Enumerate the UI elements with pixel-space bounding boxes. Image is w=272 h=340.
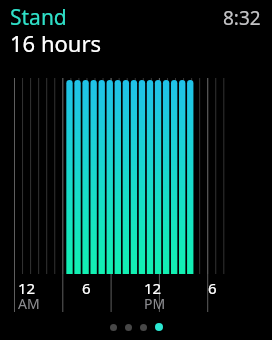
staticText: 6 — [208, 278, 217, 298]
staticText: 6 — [82, 278, 91, 298]
button[interactable]: Stand hours chart — [0, 0, 272, 340]
staticText: PM — [144, 294, 166, 313]
staticText: 12 — [18, 278, 36, 298]
staticText: 8:32 — [223, 5, 261, 31]
staticText: Stand — [10, 3, 67, 32]
staticText: 12 — [144, 278, 162, 298]
staticText: AM — [18, 294, 40, 313]
staticText: 16 hours — [10, 28, 102, 58]
